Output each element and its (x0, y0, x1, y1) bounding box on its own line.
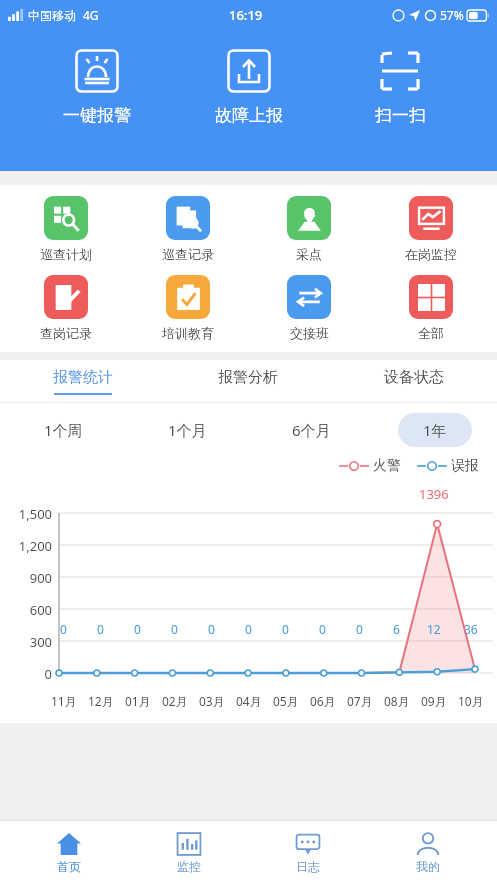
button[interactable]: 6个月 (274, 413, 348, 447)
staticText: 07月 (347, 693, 373, 709)
staticText: 12 (427, 621, 441, 637)
staticText: 0 (356, 621, 363, 637)
button[interactable]: 报警统计 (0, 360, 165, 402)
button[interactable]: 1个周 (26, 413, 100, 447)
staticText: 我的 (416, 859, 440, 874)
staticText: 日志 (296, 859, 320, 874)
staticText: 交接班 (290, 325, 329, 341)
button[interactable]: 一键报警 (42, 30, 152, 126)
staticText: 巡查计划 (40, 246, 92, 262)
staticText: 报警分析 (218, 368, 278, 387)
staticText: 01月 (125, 693, 151, 709)
button[interactable]: 交接班 (254, 275, 364, 341)
staticText: 0 (282, 621, 289, 637)
staticText: 在岗监控 (405, 246, 457, 262)
staticText: 1个月 (168, 420, 207, 440)
staticText: 扫一扫 (375, 105, 426, 126)
staticText: 06月 (310, 693, 336, 709)
staticText: 09月 (421, 693, 447, 709)
staticText: 12月 (88, 693, 114, 709)
staticText: 36 (464, 621, 478, 637)
staticText: 1,500 (0, 505, 52, 523)
staticText: 1,200 (0, 537, 52, 555)
staticText: 6个月 (292, 420, 331, 440)
button[interactable]: 日志 (258, 821, 358, 883)
staticText: 6 (393, 621, 400, 637)
button[interactable]: 首页 (19, 821, 119, 883)
staticText: 16:19 (229, 6, 263, 24)
staticText: 故障上报 (215, 105, 283, 126)
staticText: 一键报警 (63, 105, 131, 126)
staticText: 0 (171, 621, 178, 637)
staticText: 10月 (458, 693, 484, 709)
button[interactable]: 误报 (417, 457, 479, 475)
staticText: 0 (245, 621, 252, 637)
button[interactable]: 我的 (378, 821, 478, 883)
staticText: 火警 (373, 457, 401, 475)
staticText: 1年 (423, 420, 447, 440)
staticText: 首页 (57, 859, 81, 874)
staticText: 1个周 (44, 420, 83, 440)
button[interactable]: 查岗记录 (11, 275, 121, 341)
button[interactable]: 巡查计划 (11, 196, 121, 262)
staticText: 600 (0, 601, 52, 619)
staticText: 0 (97, 621, 104, 637)
staticText: 0 (134, 621, 141, 637)
button[interactable]: 采点 (254, 196, 364, 262)
button[interactable]: 监控 (139, 821, 239, 883)
staticText: 采点 (296, 246, 322, 262)
button[interactable]: 在岗监控 (376, 196, 486, 262)
staticText: 300 (0, 633, 52, 651)
button[interactable]: 设备状态 (331, 360, 497, 402)
staticText: 0 (319, 621, 326, 637)
staticText: 0 (208, 621, 215, 637)
button[interactable]: 报警分析 (165, 360, 331, 402)
staticText: 0 (60, 621, 67, 637)
staticText: 查岗记录 (40, 325, 92, 341)
staticText: 1396 (419, 485, 449, 503)
staticText: 0 (0, 665, 52, 683)
staticText: 57% (440, 7, 464, 23)
staticText: 监控 (177, 859, 201, 874)
button[interactable]: 火警 (339, 457, 401, 475)
button[interactable]: 1个月 (150, 413, 224, 447)
staticText: 全部 (418, 325, 444, 341)
staticText: 02月 (162, 693, 188, 709)
staticText: 05月 (273, 693, 299, 709)
staticText: 报警统计 (53, 368, 113, 387)
staticText: 设备状态 (384, 368, 444, 387)
staticText: 4G (83, 7, 99, 23)
staticText: 03月 (199, 693, 225, 709)
staticText: 11月 (51, 693, 77, 709)
staticText: 900 (0, 569, 52, 587)
button[interactable]: 培训教育 (133, 275, 243, 341)
button[interactable]: 全部 (376, 275, 486, 341)
button[interactable]: 故障上报 (194, 30, 304, 126)
staticText: 培训教育 (162, 325, 214, 341)
staticText: 中国移动 (28, 8, 76, 23)
button[interactable]: 扫一扫 (345, 30, 455, 126)
staticText: 误报 (451, 457, 479, 475)
staticText: 巡查记录 (162, 246, 214, 262)
button[interactable]: 巡查记录 (133, 196, 243, 262)
staticText: 08月 (384, 693, 410, 709)
staticText: 04月 (236, 693, 262, 709)
button[interactable]: 1年 (398, 413, 472, 447)
